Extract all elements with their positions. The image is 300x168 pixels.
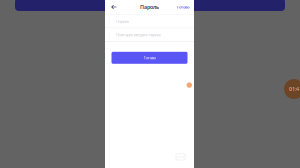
button[interactable]: Готово — [111, 52, 187, 64]
staticText: 01:4 — [289, 85, 299, 93]
staticText: Повторно введите пароль — [116, 32, 161, 37]
staticText: Готово — [177, 4, 189, 10]
button[interactable]: Готово — [177, 1, 194, 13]
staticText: Пароль — [116, 18, 129, 24]
staticText: Пароль — [140, 3, 159, 11]
button[interactable]: Back — [105, 1, 123, 12]
staticText: Готово — [143, 55, 155, 60]
